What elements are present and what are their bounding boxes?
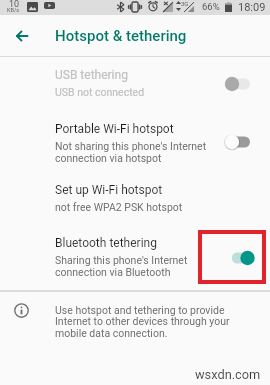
button[interactable]: USB tethering bbox=[0, 65, 270, 105]
button[interactable]: Set up Wi-Fi hotspot bbox=[0, 180, 270, 220]
button[interactable]: Portable Wi-Fi hotspot bbox=[0, 119, 270, 172]
staticText: wsxdn.com bbox=[195, 367, 261, 382]
button[interactable]: Toggle bbox=[220, 75, 256, 93]
button[interactable]: Toggle bbox=[220, 133, 256, 151]
staticText: Use hotspot and tethering to provide Int… bbox=[55, 304, 230, 340]
staticText: Hotspot & tethering bbox=[55, 27, 187, 45]
staticText: Bluetooth tethering bbox=[55, 236, 157, 250]
button[interactable]: Bluetooth tethering bbox=[0, 233, 270, 286]
staticText: USB not connected bbox=[55, 86, 145, 98]
staticText: Sharing this phone's Internet connection… bbox=[55, 254, 188, 278]
staticText: 18:09 bbox=[238, 1, 266, 14]
staticText: not free WPA2 PSK hotspot bbox=[55, 201, 183, 213]
button[interactable]: Toggle bbox=[220, 249, 256, 267]
staticText: 10 bbox=[9, 0, 20, 10]
staticText: Set up Wi-Fi hotspot bbox=[55, 183, 163, 197]
staticText: KB/s bbox=[7, 7, 19, 13]
staticText: USB tethering bbox=[55, 68, 128, 82]
button[interactable]: Info bbox=[8, 297, 35, 324]
staticText: Portable Wi-Fi hotspot bbox=[55, 122, 174, 136]
staticText: 3G bbox=[181, 0, 189, 7]
button[interactable]: Back bbox=[10, 25, 33, 48]
staticText: 66% bbox=[202, 1, 220, 12]
staticText: Not sharing this phone's Internet connec… bbox=[55, 140, 207, 164]
